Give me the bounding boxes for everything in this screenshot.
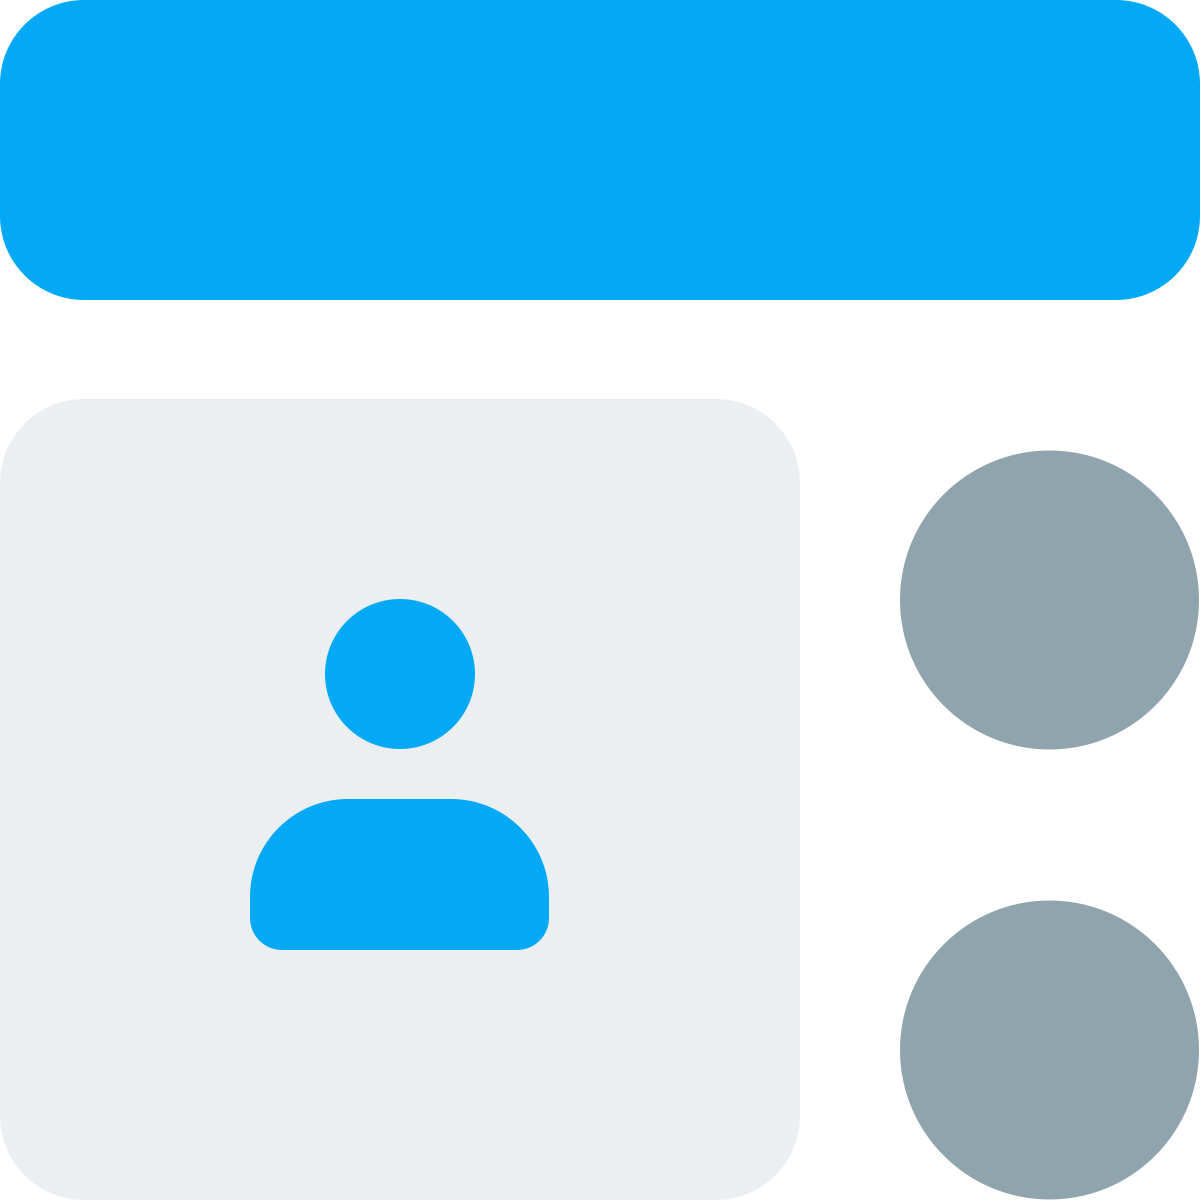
button[interactable]: More <box>900 900 1199 1199</box>
button[interactable]: Status <box>900 450 1199 749</box>
button[interactable]: Contact photo <box>0 399 800 1200</box>
button[interactable]: Header <box>0 0 1200 300</box>
